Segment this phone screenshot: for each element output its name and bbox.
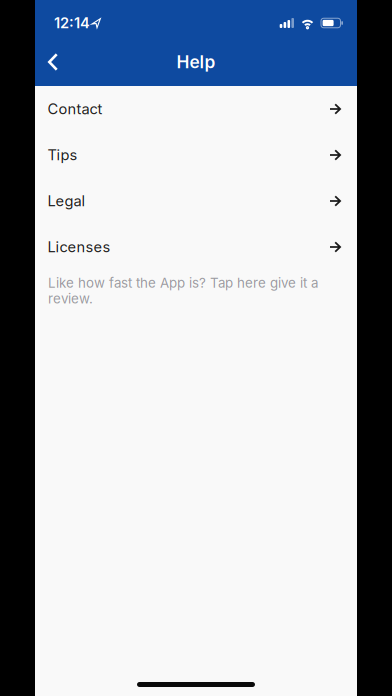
staticText: Contact xyxy=(47,100,102,118)
staticText: 12:14 xyxy=(54,14,90,32)
button[interactable]: Like how fast the App is? Tap here give … xyxy=(35,270,318,306)
button[interactable]: Licenses xyxy=(35,224,357,270)
button[interactable]: Legal xyxy=(35,178,357,224)
staticText: Tips xyxy=(47,146,77,164)
button[interactable]: Contact xyxy=(35,86,357,132)
staticText: review. xyxy=(48,291,93,306)
button[interactable]: Tips xyxy=(35,132,357,178)
staticText: Help xyxy=(176,52,215,72)
staticText: Like how fast the App is? Tap here give … xyxy=(48,275,318,291)
button[interactable]: Back xyxy=(35,41,73,82)
staticText: Licenses xyxy=(47,238,110,256)
staticText: Legal xyxy=(47,192,85,210)
